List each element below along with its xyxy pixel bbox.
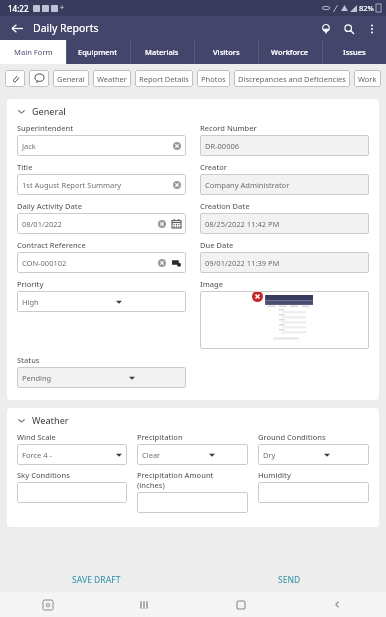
staticText: DR-00006 xyxy=(205,141,240,151)
button[interactable]: 08/25/2022 11:42 PM xyxy=(200,213,369,234)
button[interactable]: 09/01/2022 11:39 PM xyxy=(200,252,369,273)
button[interactable]: CON-000102 xyxy=(17,252,186,273)
button[interactable]: Recent apps xyxy=(96,592,192,617)
staticText: Dry xyxy=(263,450,276,460)
button[interactable]: Photos xyxy=(197,70,230,87)
staticText: General xyxy=(57,74,85,84)
staticText: High xyxy=(22,297,39,307)
staticText: Image xyxy=(200,279,224,289)
staticText: Creator xyxy=(200,162,228,172)
button[interactable]: SEND xyxy=(193,567,386,592)
staticText: SAVE DRAFT xyxy=(72,574,121,586)
button[interactable]: Search xyxy=(340,20,357,37)
staticText: 09/01/2022 11:39 PM xyxy=(205,258,280,268)
staticText: Pending xyxy=(22,373,52,383)
button[interactable]: Materials xyxy=(130,40,194,64)
staticText: Equipment xyxy=(78,47,118,57)
button[interactable]: 08/01/2022 xyxy=(17,213,186,234)
staticText: 14:22 xyxy=(8,3,29,14)
staticText: Status xyxy=(17,355,40,365)
staticText: Discrepancies and Deficiencies xyxy=(238,74,346,84)
button[interactable] xyxy=(137,492,248,513)
button[interactable]: Back xyxy=(8,19,26,37)
staticText: + xyxy=(60,3,65,13)
button[interactable]: Jack xyxy=(17,135,186,156)
button[interactable]: Discrepancies and Deficiencies xyxy=(234,70,350,87)
button[interactable]: Weather xyxy=(17,414,369,426)
staticText: Issues xyxy=(343,47,366,57)
button[interactable]: SAVE DRAFT xyxy=(0,567,193,592)
staticText: CON-000102 xyxy=(22,258,158,268)
button[interactable]: Pending xyxy=(17,367,186,388)
staticText: Clear xyxy=(142,450,161,460)
button[interactable]: DR-00006 xyxy=(200,135,369,156)
staticText: Daily Reports xyxy=(33,21,99,35)
staticText: Humidity xyxy=(258,470,291,480)
staticText: Visitors xyxy=(213,47,240,57)
button[interactable]: Report Details xyxy=(135,70,193,87)
staticText: Jack xyxy=(22,141,173,151)
button[interactable]: Remove image xyxy=(252,291,263,302)
staticText: Company Administrator xyxy=(205,180,290,190)
button[interactable]: Clear xyxy=(137,444,248,465)
staticText: Contract Reference xyxy=(17,240,86,250)
button[interactable]: Equipment xyxy=(66,40,130,64)
button[interactable]: More options xyxy=(363,20,380,37)
staticText: Superintendent xyxy=(17,123,74,133)
button[interactable]: Home xyxy=(192,592,289,617)
staticText: Weather xyxy=(32,414,69,426)
button[interactable]: High xyxy=(17,291,186,312)
staticText: Due Date xyxy=(200,240,234,250)
staticText: 08/25/2022 11:42 PM xyxy=(205,219,280,229)
staticText: (inches) xyxy=(137,480,165,490)
staticText: Main Form xyxy=(14,47,53,57)
button[interactable]: Attach xyxy=(5,70,25,87)
button[interactable]: General xyxy=(53,70,89,87)
button[interactable] xyxy=(17,482,127,503)
staticText: Photos xyxy=(201,74,226,84)
staticText: Creation Date xyxy=(200,201,250,211)
staticText: 1st August Report Summary xyxy=(22,180,173,190)
staticText: Workforce xyxy=(358,74,377,84)
button[interactable]: Force 4 - Moderate Breeze xyxy=(17,444,127,465)
staticText: Precipitation Amount xyxy=(137,470,214,480)
button[interactable]: 1st August Report Summary xyxy=(17,174,186,195)
staticText: Precipitation xyxy=(137,432,183,442)
staticText: Workforce xyxy=(271,47,309,57)
button[interactable]: Main Form xyxy=(0,40,66,64)
staticText: Report Details xyxy=(139,74,189,84)
staticText: General xyxy=(32,105,66,117)
staticText: 82% xyxy=(359,3,374,13)
button[interactable]: Visitors xyxy=(194,40,258,64)
button[interactable]: Comments xyxy=(29,70,49,87)
staticText: Sky Conditions xyxy=(17,470,70,480)
staticText: Materials xyxy=(145,47,179,57)
button[interactable]: Back xyxy=(289,592,386,617)
button[interactable]: Weather xyxy=(93,70,131,87)
button[interactable]: Workforce xyxy=(354,70,381,87)
button[interactable]: Issues xyxy=(322,40,386,64)
staticText: Wind Scale xyxy=(17,432,56,442)
staticText: Force 4 - Moderate Breeze xyxy=(22,450,69,460)
button[interactable]: Location xyxy=(317,20,334,37)
button[interactable]: Dry xyxy=(258,444,369,465)
staticText: 08/01/2022 xyxy=(22,219,158,229)
staticText: Title xyxy=(17,162,33,172)
staticText: Priority xyxy=(17,279,44,289)
staticText: Record Number xyxy=(200,123,257,133)
staticText: SEND xyxy=(278,574,301,586)
button[interactable] xyxy=(258,482,369,503)
button[interactable]: Attached image xyxy=(200,291,369,349)
staticText: Weather xyxy=(97,74,127,84)
button[interactable]: Screenshot xyxy=(0,592,96,617)
button[interactable]: Company Administrator xyxy=(200,174,369,195)
staticText: Ground Conditions xyxy=(258,432,326,442)
staticText: Daily Activity Date xyxy=(17,201,82,211)
button[interactable]: General xyxy=(17,105,369,117)
button[interactable]: Workforce xyxy=(258,40,322,64)
